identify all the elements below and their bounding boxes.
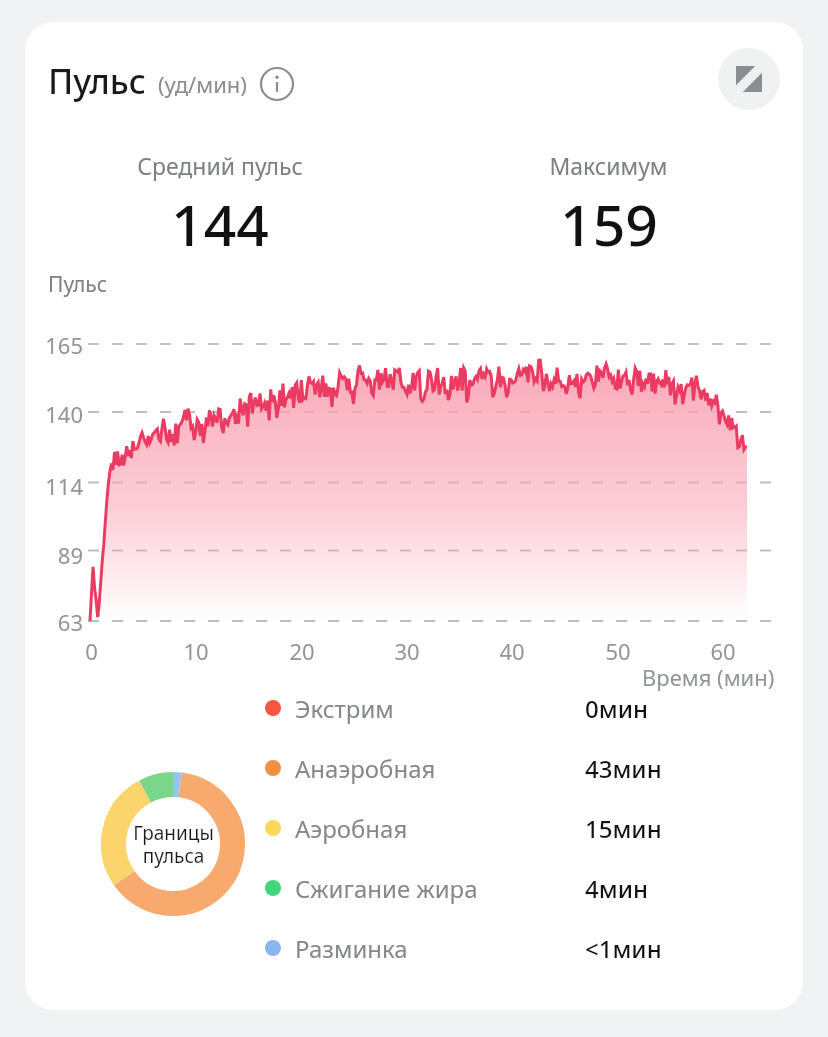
- staticText: 140: [45, 399, 83, 429]
- staticText: (уд/мин): [158, 69, 247, 99]
- staticText: 4мин: [585, 872, 648, 905]
- staticText: 50: [605, 636, 631, 666]
- staticText: 0: [85, 636, 98, 666]
- staticText: Сжигание жира: [295, 872, 478, 905]
- staticText: Экстрим: [295, 692, 394, 725]
- staticText: 0мин: [585, 692, 648, 725]
- button[interactable]: Развернуть: [718, 48, 780, 110]
- staticText: Границы пульса: [133, 820, 214, 869]
- button[interactable]: Максимум: [414, 150, 803, 263]
- button[interactable]: Разминка: [265, 920, 765, 976]
- staticText: 63: [57, 607, 83, 637]
- button[interactable]: Анаэробная: [265, 740, 765, 796]
- staticText: Разминка: [295, 932, 408, 965]
- staticText: Пульс: [48, 58, 146, 104]
- staticText: 15мин: [585, 812, 662, 845]
- staticText: Средний пульс: [137, 150, 303, 181]
- staticText: 144: [171, 185, 269, 263]
- staticText: 159: [560, 185, 658, 263]
- button[interactable]: Сжигание жира: [265, 860, 765, 916]
- staticText: Пульс: [48, 270, 108, 299]
- staticText: Максимум: [549, 150, 668, 181]
- staticText: 40: [499, 636, 525, 666]
- staticText: Анаэробная: [295, 752, 436, 785]
- button[interactable]: Информация: [259, 66, 295, 102]
- staticText: Время (мин): [642, 662, 775, 692]
- staticText: 43мин: [585, 752, 662, 785]
- staticText: <1мин: [585, 932, 662, 965]
- button[interactable]: Средний пульс: [25, 150, 414, 263]
- staticText: 10: [183, 636, 209, 666]
- staticText: 30: [394, 636, 420, 666]
- staticText: Аэробная: [295, 812, 408, 845]
- staticText: 165: [45, 330, 83, 360]
- staticText: 60: [710, 636, 736, 666]
- staticText: 20: [289, 636, 315, 666]
- staticText: 114: [45, 471, 83, 501]
- button[interactable]: Пульс: [48, 58, 295, 104]
- button[interactable]: Экстрим: [265, 680, 765, 736]
- button[interactable]: Аэробная: [265, 800, 765, 856]
- staticText: 89: [57, 540, 83, 570]
